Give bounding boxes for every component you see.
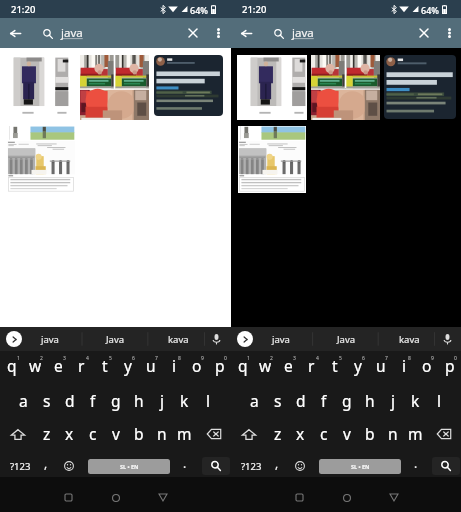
button[interactable]: Java: [324, 327, 368, 351]
button[interactable]: x: [289, 419, 312, 449]
button[interactable]: n: [381, 419, 404, 449]
button[interactable]: Back: [150, 485, 175, 510]
button[interactable]: g: [335, 386, 358, 416]
button[interactable]: Recents: [287, 485, 312, 510]
button[interactable]: 8: [162, 351, 185, 384]
button[interactable]: [311, 55, 380, 120]
button[interactable]: 7: [369, 351, 392, 384]
button[interactable]: Backspace: [427, 419, 461, 449]
button[interactable]: 6: [116, 351, 139, 384]
button[interactable]: .: [170, 450, 200, 482]
button[interactable]: k: [173, 386, 196, 416]
button[interactable]: 5: [93, 351, 116, 384]
button[interactable]: m: [404, 419, 427, 449]
button[interactable]: 8: [392, 351, 415, 384]
button[interactable]: Search: [202, 457, 230, 475]
button[interactable]: 0: [438, 351, 461, 384]
button[interactable]: d: [289, 386, 312, 416]
button[interactable]: 3: [47, 351, 70, 384]
button[interactable]: java: [258, 327, 303, 351]
button[interactable]: Java: [93, 327, 137, 351]
button[interactable]: [384, 55, 456, 119]
button[interactable]: b: [127, 419, 150, 449]
button[interactable]: ,: [40, 450, 51, 482]
button[interactable]: 7: [139, 351, 162, 384]
button[interactable]: a: [12, 386, 35, 416]
button[interactable]: 1: [231, 351, 254, 384]
button[interactable]: 4: [300, 351, 323, 384]
button[interactable]: Navigate up: [3, 21, 27, 45]
button[interactable]: 5: [323, 351, 346, 384]
button[interactable]: SL • EN: [319, 459, 401, 474]
button[interactable]: [7, 126, 75, 193]
button[interactable]: [80, 55, 149, 120]
staticText: y: [354, 355, 362, 376]
button[interactable]: [237, 55, 307, 120]
button[interactable]: Shift: [0, 419, 35, 449]
button[interactable]: g: [104, 386, 127, 416]
button[interactable]: n: [150, 419, 173, 449]
button[interactable]: kava: [387, 327, 431, 351]
button[interactable]: f: [81, 386, 104, 416]
button[interactable]: 3: [277, 351, 300, 384]
button[interactable]: Home: [334, 485, 359, 510]
button[interactable]: [238, 126, 306, 193]
staticText: 7: [155, 355, 158, 362]
button[interactable]: Expand suggestions: [237, 331, 253, 347]
button[interactable]: Voice input: [207, 327, 226, 351]
button[interactable]: l: [196, 386, 219, 416]
button[interactable]: 2: [24, 351, 47, 384]
button[interactable]: v: [104, 419, 127, 449]
button[interactable]: More options: [438, 22, 460, 44]
button[interactable]: z: [35, 419, 58, 449]
button[interactable]: ?123: [231, 450, 271, 482]
button[interactable]: 2: [254, 351, 277, 384]
button[interactable]: k: [404, 386, 427, 416]
button[interactable]: Shift: [231, 419, 266, 449]
button[interactable]: j: [381, 386, 404, 416]
button[interactable]: b: [358, 419, 381, 449]
button[interactable]: 0: [208, 351, 231, 384]
button[interactable]: [0, 55, 70, 120]
button[interactable]: Search: [432, 457, 460, 475]
button[interactable]: ?123: [0, 450, 40, 482]
button[interactable]: 9: [415, 351, 438, 384]
button[interactable]: .: [401, 450, 431, 482]
button[interactable]: s: [35, 386, 58, 416]
button[interactable]: [154, 55, 223, 116]
button[interactable]: More options: [207, 22, 229, 44]
button[interactable]: java: [27, 327, 72, 351]
button[interactable]: 1: [0, 351, 24, 384]
button[interactable]: 4: [70, 351, 93, 384]
button[interactable]: Emoji: [51, 450, 86, 482]
button[interactable]: 9: [185, 351, 208, 384]
button[interactable]: Voice input: [438, 327, 457, 351]
button[interactable]: a: [243, 386, 266, 416]
button[interactable]: x: [58, 419, 81, 449]
button[interactable]: ,: [271, 450, 282, 482]
button[interactable]: Back: [381, 485, 406, 510]
button[interactable]: Clear query: [181, 21, 205, 45]
button[interactable]: kava: [156, 327, 200, 351]
button[interactable]: Backspace: [196, 419, 231, 449]
button[interactable]: h: [127, 386, 150, 416]
button[interactable]: Recents: [56, 485, 81, 510]
button[interactable]: f: [312, 386, 335, 416]
button[interactable]: Home: [103, 485, 128, 510]
button[interactable]: v: [335, 419, 358, 449]
button[interactable]: Clear query: [412, 21, 436, 45]
button[interactable]: c: [81, 419, 104, 449]
button[interactable]: j: [150, 386, 173, 416]
button[interactable]: c: [312, 419, 335, 449]
button[interactable]: Emoji: [282, 450, 317, 482]
button[interactable]: d: [58, 386, 81, 416]
button[interactable]: Navigate up: [234, 21, 258, 45]
button[interactable]: 6: [346, 351, 369, 384]
button[interactable]: z: [266, 419, 289, 449]
button[interactable]: h: [358, 386, 381, 416]
button[interactable]: SL • EN: [88, 459, 170, 474]
button[interactable]: Expand suggestions: [6, 331, 22, 347]
button[interactable]: m: [173, 419, 196, 449]
button[interactable]: s: [266, 386, 289, 416]
button[interactable]: l: [427, 386, 450, 416]
